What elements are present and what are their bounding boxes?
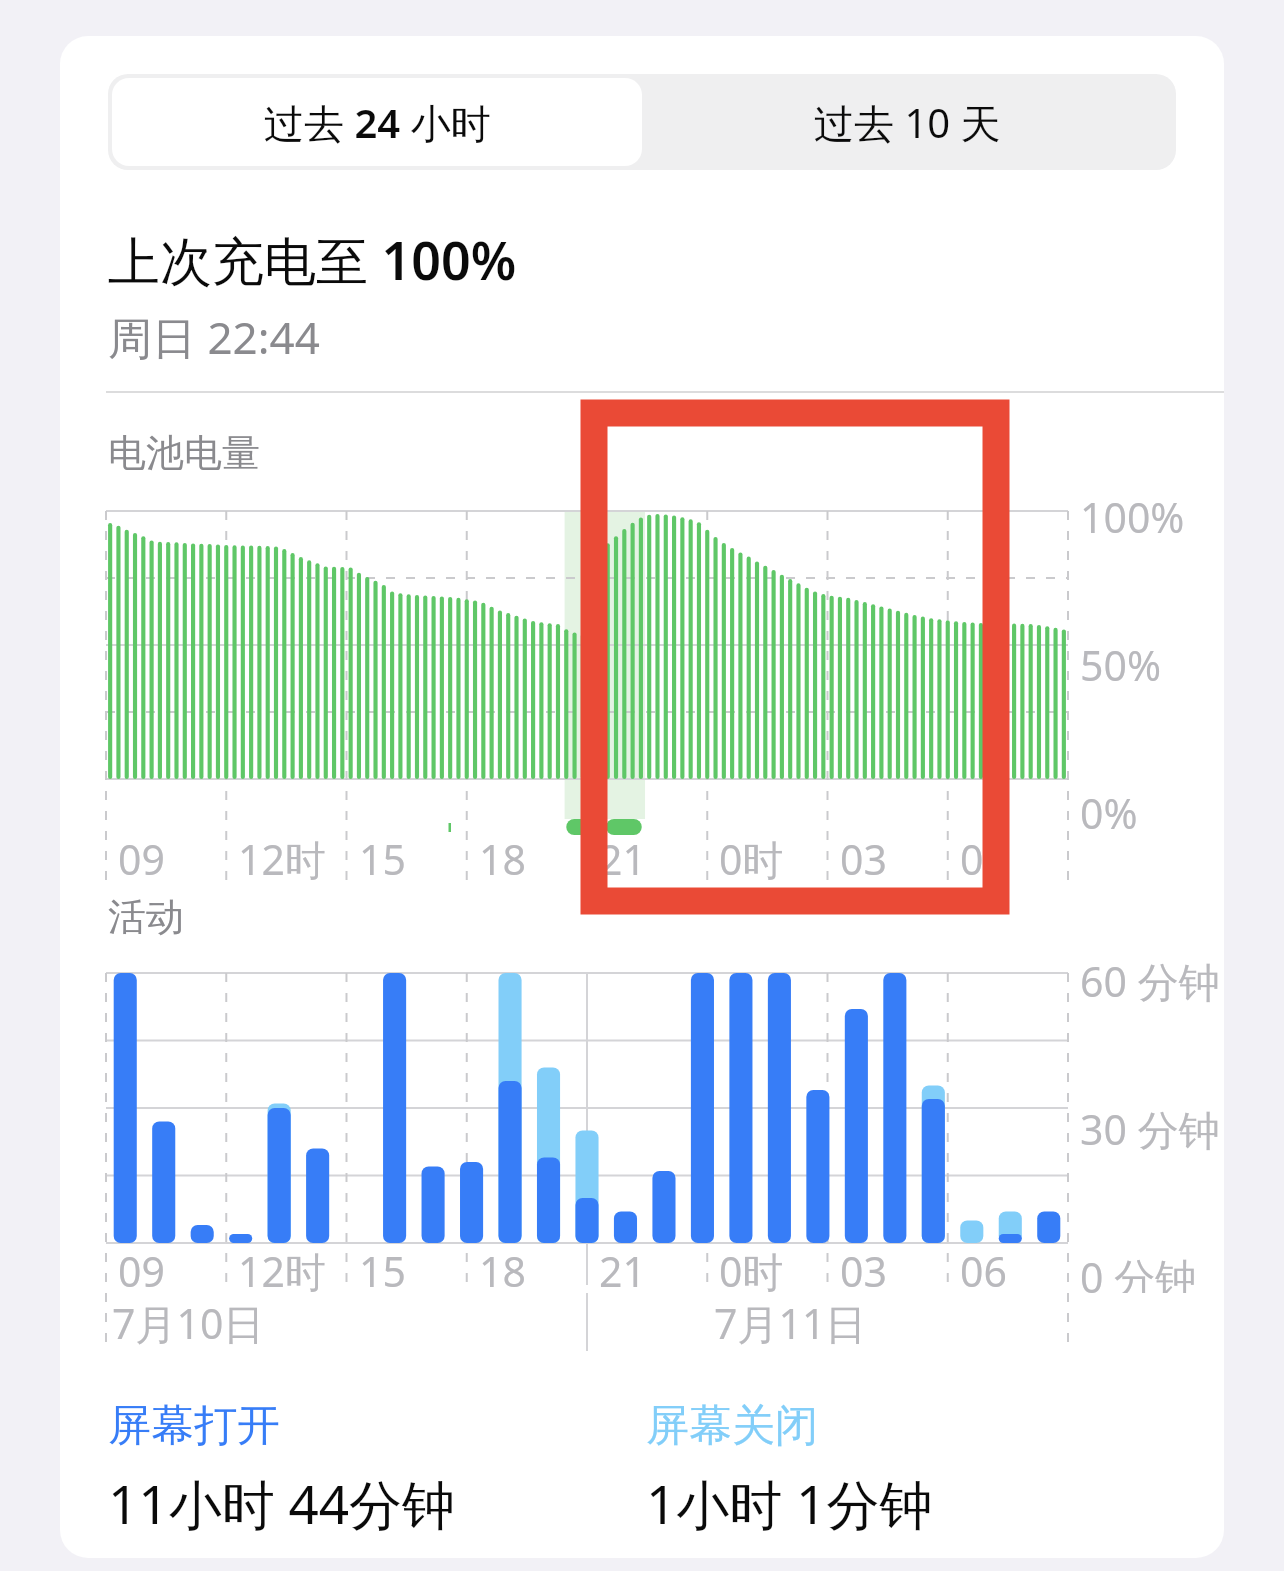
staticText: 上次充电至 100% [108, 224, 517, 295]
staticText: 06 [960, 831, 1007, 887]
staticText: 18 [479, 1243, 526, 1299]
staticText: 过去 24 小时 [264, 95, 491, 150]
staticText: 0时 [719, 1243, 784, 1299]
staticText: 30 分钟 [1080, 1101, 1220, 1157]
staticText: 0时 [719, 831, 784, 887]
staticText: 50% [1080, 637, 1161, 693]
staticText: 12时 [238, 831, 326, 887]
staticText: 周日 22:44 [108, 307, 320, 367]
staticText: 活动 [108, 893, 184, 941]
staticText: 03 [840, 831, 887, 887]
staticText: 03 [840, 1243, 887, 1299]
staticText: 09 [118, 831, 165, 887]
staticText: 0 分钟 [1080, 1249, 1197, 1293]
staticText: 11小时 44分钟 [108, 1467, 456, 1539]
staticText: 15 [359, 1243, 406, 1299]
staticText: 100% [1080, 489, 1185, 545]
staticText: 15 [359, 831, 406, 887]
staticText: 屏幕关闭 [646, 1399, 818, 1453]
staticText: 电池电量 [108, 429, 260, 477]
staticText: 7月11日 [714, 1295, 867, 1351]
staticText: 21 [599, 1243, 646, 1299]
staticText: 09 [118, 1243, 165, 1299]
staticText: 18 [479, 831, 526, 887]
staticText: 0% [1080, 785, 1138, 841]
staticText: 06 [960, 1243, 1007, 1299]
staticText: 1小时 1分钟 [646, 1467, 933, 1539]
staticText: 12时 [238, 1243, 326, 1299]
button[interactable]: 过去 24 小时 [112, 78, 642, 166]
staticText: 7月10日 [112, 1295, 265, 1351]
staticText: 屏幕打开 [108, 1399, 280, 1453]
staticText: 21 [599, 831, 646, 887]
button[interactable]: 过去 10 天 [642, 78, 1172, 166]
staticText: 过去 10 天 [814, 95, 1001, 150]
staticText: 60 分钟 [1080, 953, 1220, 1009]
